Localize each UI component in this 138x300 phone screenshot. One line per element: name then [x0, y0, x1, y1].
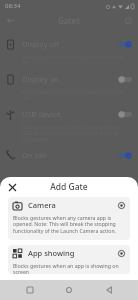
button[interactable]: Off — [118, 76, 132, 83]
button[interactable]: Close — [4, 179, 20, 195]
button[interactable]: On call — [0, 145, 138, 165]
button[interactable]: Off — [118, 111, 132, 118]
button[interactable]: App showing — [8, 245, 130, 274]
button[interactable]: Home — [59, 280, 79, 300]
button[interactable]: On — [118, 41, 132, 48]
staticText: Gates — [58, 15, 80, 26]
button[interactable]: Camera — [8, 197, 130, 240]
staticText: Blocks gestures when any camera app is o… — [13, 214, 124, 235]
staticText: Blocks gestures when an app is showing o… — [13, 262, 124, 274]
staticText: Display off — [22, 39, 118, 49]
staticText: 08:34 — [5, 2, 21, 10]
button[interactable]: Display on — [0, 69, 138, 104]
button[interactable]: Back — [99, 280, 119, 300]
button[interactable]: Recents — [20, 280, 40, 300]
staticText: App showing — [28, 248, 118, 258]
staticText: Camera — [28, 200, 118, 210]
button[interactable]: Back — [3, 13, 17, 27]
button[interactable]: Help — [121, 13, 135, 27]
button[interactable]: USB device — [0, 104, 138, 145]
staticText: Add Gate — [50, 181, 88, 193]
button[interactable]: Display off — [0, 34, 138, 69]
button[interactable]: On — [118, 152, 132, 159]
